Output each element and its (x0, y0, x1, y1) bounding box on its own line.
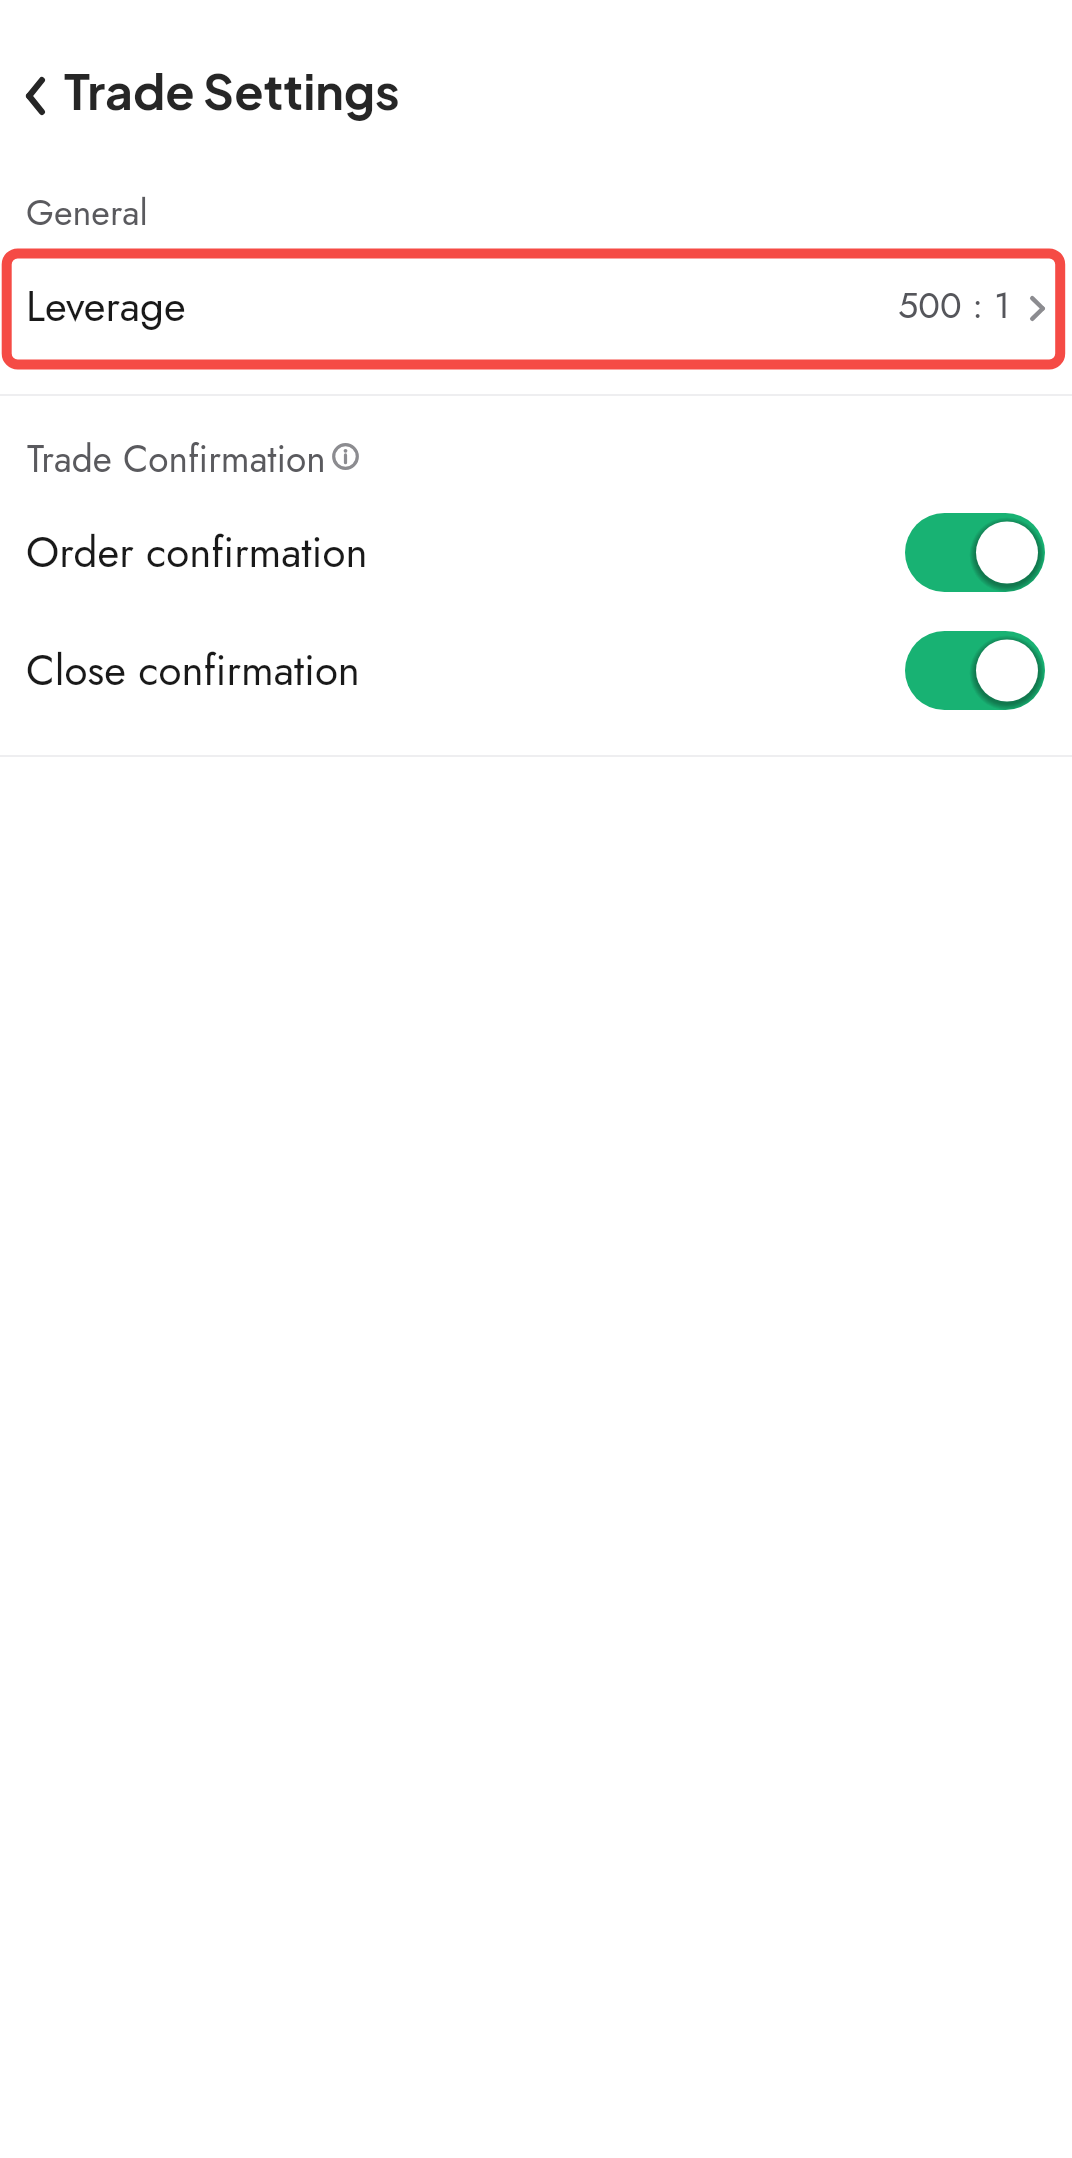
staticText: Order confirmation (26, 522, 368, 583)
staticText: 500 : 1 (898, 279, 1011, 331)
button[interactable]: Close confirmation toggle, on (905, 631, 1045, 710)
staticText: Trade Confirmation (27, 432, 326, 485)
button[interactable]: Leverage (0, 241, 1072, 371)
staticText: Trade Settings (64, 60, 400, 120)
staticText: Leverage (26, 276, 186, 337)
button[interactable]: Close confirmation (0, 611, 1072, 729)
button[interactable]: Order confirmation (0, 493, 1072, 611)
button[interactable]: Information (327, 438, 363, 474)
staticText: Close confirmation (26, 640, 360, 701)
staticText: General (26, 186, 148, 238)
button[interactable]: Order confirmation toggle, on (905, 513, 1045, 592)
button[interactable]: Back (0, 52, 76, 140)
